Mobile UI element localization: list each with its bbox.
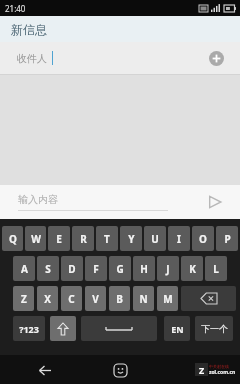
button[interactable]: L <box>205 256 227 281</box>
staticText: Y <box>128 232 135 246</box>
staticText: 收件人 <box>17 52 47 65</box>
staticText: F <box>93 262 99 276</box>
button[interactable]: Key <box>181 286 236 311</box>
button[interactable]: W <box>25 226 46 251</box>
button[interactable]: J <box>157 256 179 281</box>
button[interactable]: X <box>37 286 58 311</box>
staticText: 中关村在线 <box>209 364 229 369</box>
button[interactable]: Key <box>81 316 157 341</box>
staticText: M <box>163 292 173 306</box>
staticText: S <box>45 262 51 276</box>
staticText: Z <box>199 364 205 376</box>
staticText: H <box>140 262 148 276</box>
staticText: P <box>224 232 231 246</box>
staticText: 新信息 <box>11 22 47 37</box>
button[interactable]: Z <box>13 286 34 311</box>
staticText: T <box>104 232 110 246</box>
staticText: A <box>21 262 28 276</box>
staticText: N <box>139 292 148 306</box>
button[interactable]: A <box>13 256 35 281</box>
staticText: Q <box>9 232 17 246</box>
button[interactable]: D <box>61 256 83 281</box>
staticText: U <box>151 232 159 246</box>
staticText: 21:40 <box>5 3 26 14</box>
button[interactable]: O <box>192 226 214 251</box>
staticText: 下一个 <box>201 323 228 334</box>
staticText: E <box>56 232 62 246</box>
button[interactable]: ?123 <box>13 316 45 341</box>
button[interactable]: EN <box>164 316 190 341</box>
button[interactable]: C <box>61 286 82 311</box>
staticText: ?123 <box>19 323 39 335</box>
staticText: W <box>31 232 41 246</box>
button[interactable]: Q <box>2 226 23 251</box>
staticText: R <box>80 232 87 246</box>
button[interactable]: G <box>109 256 131 281</box>
staticText: 输入内容 <box>18 193 58 206</box>
button[interactable]: 输入内容 <box>18 193 168 211</box>
button[interactable]: B <box>109 286 130 311</box>
staticText: L <box>213 262 219 276</box>
button[interactable]: F <box>85 256 107 281</box>
staticText: B <box>116 292 123 306</box>
staticText: K <box>189 262 196 276</box>
button[interactable]: S <box>37 256 59 281</box>
button[interactable]: T <box>96 226 118 251</box>
button[interactable]: Key <box>50 316 76 341</box>
staticText: EN <box>171 323 184 335</box>
staticText: X <box>44 292 51 306</box>
button[interactable]: Back <box>32 358 56 382</box>
staticText: V <box>92 292 99 306</box>
button[interactable]: Add recipient <box>204 46 228 70</box>
button[interactable]: I <box>168 226 190 251</box>
button[interactable]: M <box>157 286 178 311</box>
staticText: O <box>199 232 207 246</box>
button[interactable]: P <box>216 226 238 251</box>
button[interactable]: E <box>48 226 70 251</box>
button[interactable]: H <box>133 256 155 281</box>
button[interactable]: N <box>133 286 154 311</box>
staticText: I <box>177 232 181 246</box>
button[interactable]: V <box>85 286 106 311</box>
staticText: C <box>68 292 75 306</box>
staticText: zol.com.cn <box>209 369 236 376</box>
button[interactable]: R <box>72 226 94 251</box>
staticText: G <box>116 262 124 276</box>
staticText: Z <box>21 292 27 306</box>
staticText: D <box>68 262 76 276</box>
button[interactable]: 收件人 <box>0 42 240 74</box>
staticText: J <box>166 262 170 276</box>
button[interactable]: K <box>181 256 203 281</box>
button[interactable]: 下一个 <box>195 316 233 341</box>
button[interactable]: U <box>144 226 166 251</box>
button[interactable]: Send <box>202 189 228 215</box>
button[interactable]: Home <box>108 358 132 382</box>
button[interactable]: Y <box>120 226 142 251</box>
